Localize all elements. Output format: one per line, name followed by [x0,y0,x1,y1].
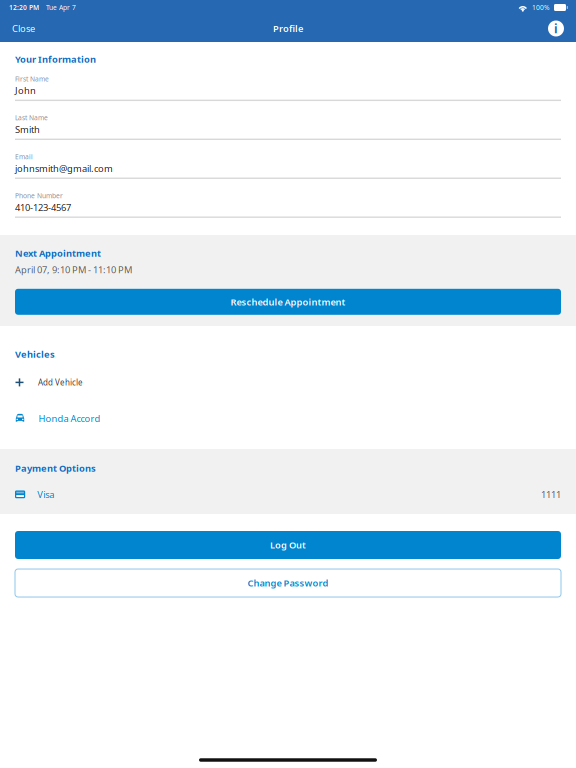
staticText: April 07, 9:10 PM - 11:10 PM [15,263,132,276]
staticText: 12:20 PM [9,3,39,12]
staticText: Add Vehicle [38,377,83,388]
button[interactable]: Reschedule Appointment [15,289,561,315]
button[interactable]: Close [0,15,45,42]
button[interactable]: Log Out [15,531,561,559]
staticText: Close [12,22,35,35]
staticText: Last Name [15,113,48,122]
staticText: 100% [532,3,550,12]
staticText: Honda Accord [38,412,100,425]
staticText: Tue Apr 7 [46,3,76,12]
staticText: johnsmith@gmail.com [15,162,113,174]
staticText: Visa [37,488,54,501]
staticText: Profile [273,22,303,35]
staticText: Reschedule Appointment [230,296,345,308]
staticText: 1111 [541,488,561,501]
staticText: i [554,20,558,36]
button[interactable]: Visa [15,486,561,502]
staticText: First Name [15,74,49,83]
staticText: Vehicles [15,348,55,360]
staticText: Your Information [15,53,96,65]
staticText: Payment Options [15,462,96,474]
button[interactable]: Change Password [15,569,561,597]
button[interactable]: Honda Accord [15,410,561,426]
staticText: 410-123-4567 [15,201,71,213]
staticText: Change Password [247,577,328,589]
staticText: Email [15,152,33,161]
staticText: Next Appointment [15,247,101,259]
staticText: Phone Number [15,191,63,200]
button[interactable]: Information [537,15,576,42]
staticText: Log Out [270,539,306,551]
staticText: John [15,84,36,97]
staticText: Smith [15,123,40,136]
button[interactable]: Add Vehicle [15,374,561,390]
